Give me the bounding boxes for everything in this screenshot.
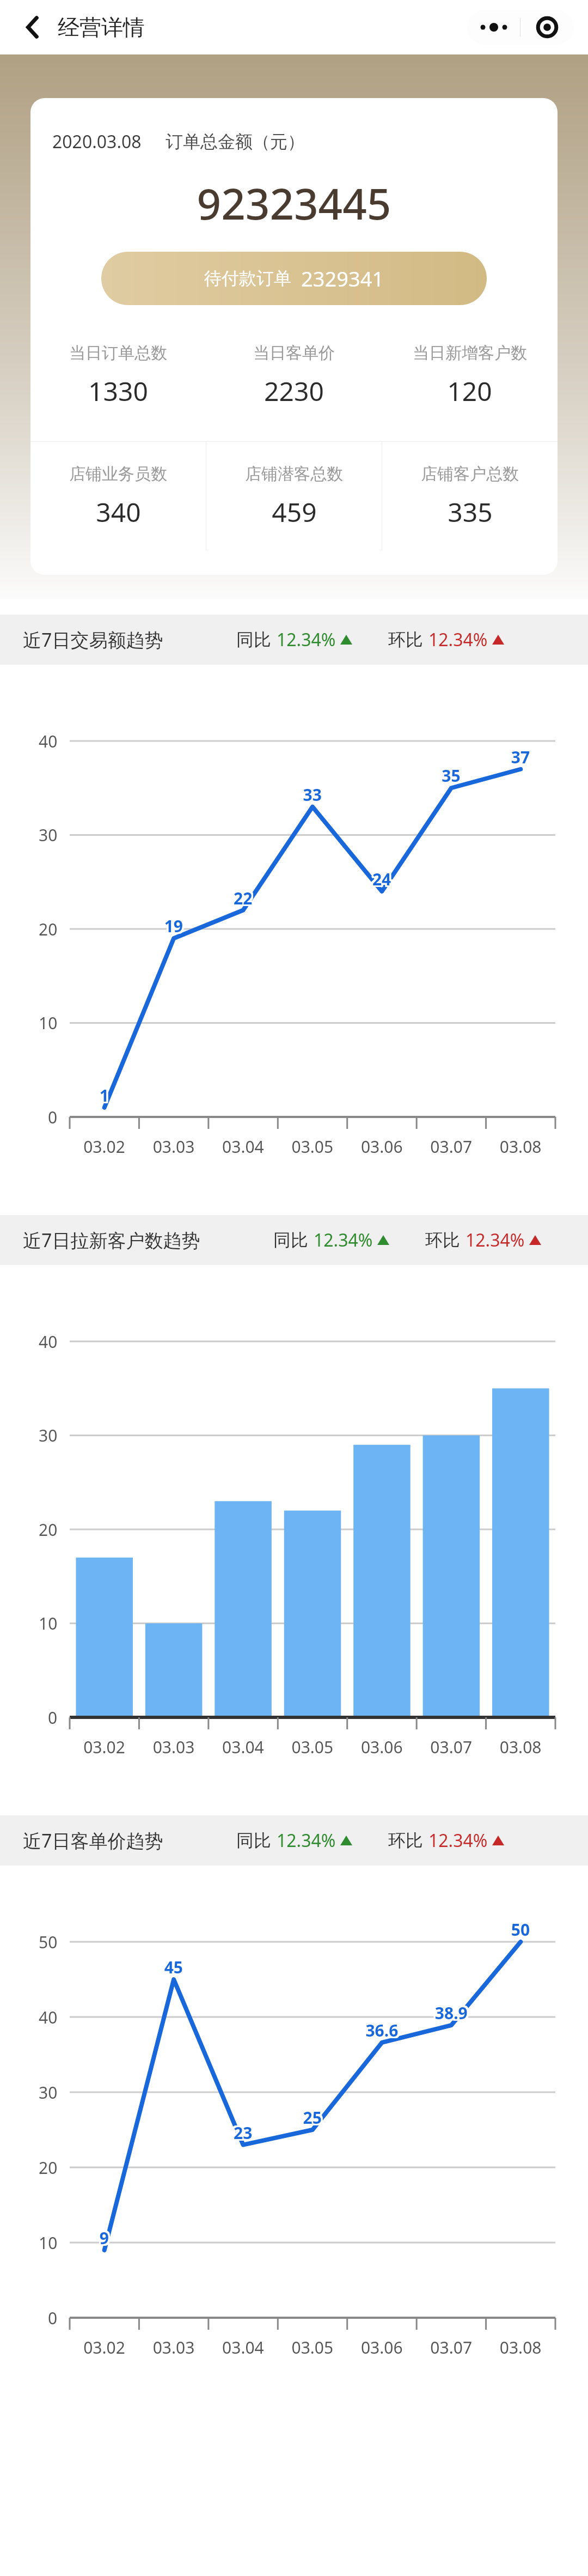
staticText: 店铺客户总数 — [421, 464, 519, 484]
staticText: 2329341 — [301, 264, 384, 293]
staticText: 120 — [447, 373, 492, 409]
staticText: 同比 — [273, 1229, 308, 1251]
staticText: 经营详情 — [58, 14, 145, 41]
staticText: 店铺潜客总数 — [245, 464, 343, 484]
staticText: 环比 — [388, 629, 423, 651]
staticText: 当日订单总数 — [69, 343, 167, 363]
button[interactable]: 店铺客户总数 — [382, 442, 558, 551]
staticText: 近7日交易额趋势 — [23, 627, 163, 652]
button[interactable]: 当日订单总数 — [30, 335, 206, 416]
staticText: 当日新增客户数 — [413, 343, 527, 363]
staticText: 同比 — [236, 629, 271, 651]
button[interactable]: 当日新增客户数 — [382, 335, 558, 416]
staticText: 近7日拉新客户数趋势 — [23, 1228, 200, 1253]
staticText: 340 — [96, 494, 141, 530]
staticText: 92323445 — [30, 174, 558, 232]
staticText: 当日客单价 — [253, 343, 335, 363]
staticText: 2020.03.08 — [52, 130, 142, 154]
button[interactable]: 待付款订单 — [101, 252, 487, 305]
staticText: 店铺业务员数 — [69, 464, 167, 484]
staticText: 2230 — [264, 373, 324, 409]
staticText: 同比 — [236, 1830, 271, 1851]
staticText: 335 — [448, 494, 493, 530]
button[interactable]: Close — [520, 10, 574, 45]
staticText: 459 — [272, 494, 317, 530]
staticText: 近7日客单价趋势 — [23, 1828, 163, 1853]
staticText: 1330 — [88, 373, 148, 409]
staticText: 12.34% — [277, 1828, 336, 1852]
staticText: 12.34% — [428, 1828, 488, 1852]
staticText: 订单总金额（元） — [166, 131, 305, 153]
staticText: 待付款订单 — [204, 268, 291, 289]
staticText: 环比 — [425, 1229, 460, 1251]
staticText: 12.34% — [314, 1228, 373, 1252]
staticText: 12.34% — [277, 628, 336, 652]
staticText: 12.34% — [428, 628, 488, 652]
staticText: 12.34% — [465, 1228, 525, 1252]
button[interactable]: 近7日客单价趋势 — [0, 1815, 588, 1866]
button[interactable]: 当日客单价 — [206, 335, 382, 416]
button[interactable]: 店铺潜客总数 — [206, 442, 382, 551]
button[interactable]: Back — [12, 8, 51, 47]
button[interactable]: 近7日拉新客户数趋势 — [0, 1215, 588, 1265]
button[interactable]: 近7日交易额趋势 — [0, 615, 588, 665]
staticText: 环比 — [388, 1830, 423, 1851]
button[interactable]: 店铺业务员数 — [30, 442, 206, 551]
button[interactable]: More — [467, 10, 520, 45]
